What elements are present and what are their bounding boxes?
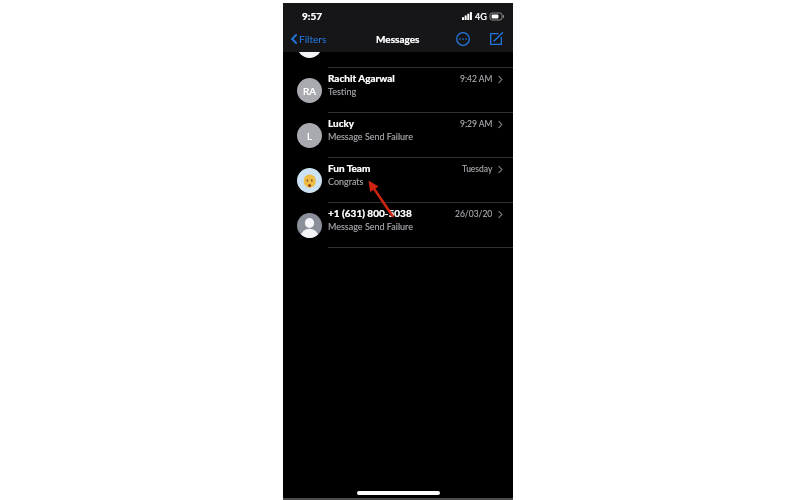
staticText: +1 (631) 800-5038 [328, 207, 412, 219]
button[interactable]: More options [454, 30, 472, 48]
button[interactable]: L [283, 113, 513, 158]
staticText: 26/03/20 [455, 209, 493, 219]
staticText: Rachit Agarwal [328, 72, 395, 84]
staticText: 4G [475, 11, 487, 22]
staticText: Congrats [328, 176, 364, 187]
button[interactable]: Fun Team [283, 158, 513, 203]
staticText: Testing [328, 86, 357, 97]
staticText: Message Send Failure [328, 221, 413, 232]
staticText: Tuesday [462, 164, 493, 174]
staticText: Filters [299, 33, 327, 45]
button[interactable]: Filters [291, 33, 327, 45]
staticText: Messages [376, 33, 420, 45]
staticText: 9:29 AM [460, 119, 493, 129]
staticText: 9:57 [302, 10, 322, 22]
staticText: RA [303, 85, 317, 97]
button[interactable]: New message [487, 30, 505, 48]
staticText: Fun Team [328, 162, 371, 174]
staticText: L [307, 130, 313, 142]
button[interactable]: RA [283, 68, 513, 113]
staticText: Lucky [328, 117, 355, 129]
staticText: 9:42 AM [460, 74, 493, 84]
staticText: Message Send Failure [328, 131, 413, 142]
button[interactable]: +1 (631) 800-5038 [283, 203, 513, 248]
